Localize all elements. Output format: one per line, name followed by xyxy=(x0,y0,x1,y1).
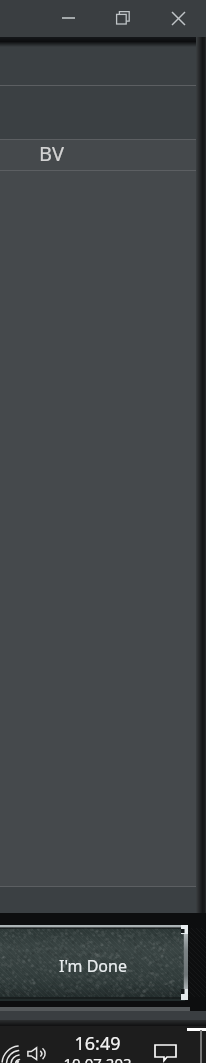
button[interactable]: Network xyxy=(2,1047,21,1063)
button[interactable]: Notifications xyxy=(153,1043,179,1061)
button[interactable]: BV xyxy=(0,140,206,170)
button[interactable]: 16:49 xyxy=(61,1031,134,1063)
button[interactable]: I'm Done xyxy=(0,925,188,1000)
button[interactable]: Minimize xyxy=(52,0,84,36)
button[interactable]: Maximize xyxy=(107,0,139,35)
staticText: 16:49 xyxy=(61,1031,134,1056)
staticText: BV xyxy=(39,140,64,167)
button[interactable]: Volume xyxy=(27,1047,48,1061)
staticText: I'm Done xyxy=(59,955,127,977)
staticText: 10.07.2023 xyxy=(61,1053,134,1063)
button[interactable]: Close xyxy=(162,0,194,36)
